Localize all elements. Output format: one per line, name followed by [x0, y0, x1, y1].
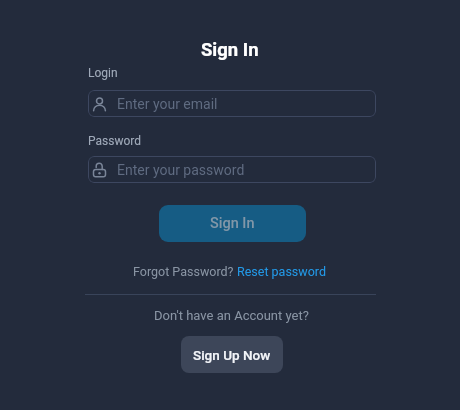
button[interactable]: Sign Up Now [181, 336, 283, 373]
staticText: Login [88, 66, 118, 80]
staticText: Enter your email [117, 96, 218, 112]
button[interactable]: Sign In [159, 205, 306, 242]
staticText: Sign Up Now [193, 347, 271, 363]
button[interactable]: Enter your email [88, 90, 376, 117]
staticText: Sign In [201, 39, 259, 61]
button[interactable]: Reset password [237, 264, 327, 279]
staticText: Sign In [210, 215, 255, 232]
staticText: Don't have an Account yet? [154, 308, 309, 323]
staticText: Password [88, 134, 142, 148]
staticText: Enter your password [117, 162, 245, 178]
staticText: Forgot Password? [133, 264, 237, 279]
button[interactable]: Enter your password [88, 156, 376, 183]
